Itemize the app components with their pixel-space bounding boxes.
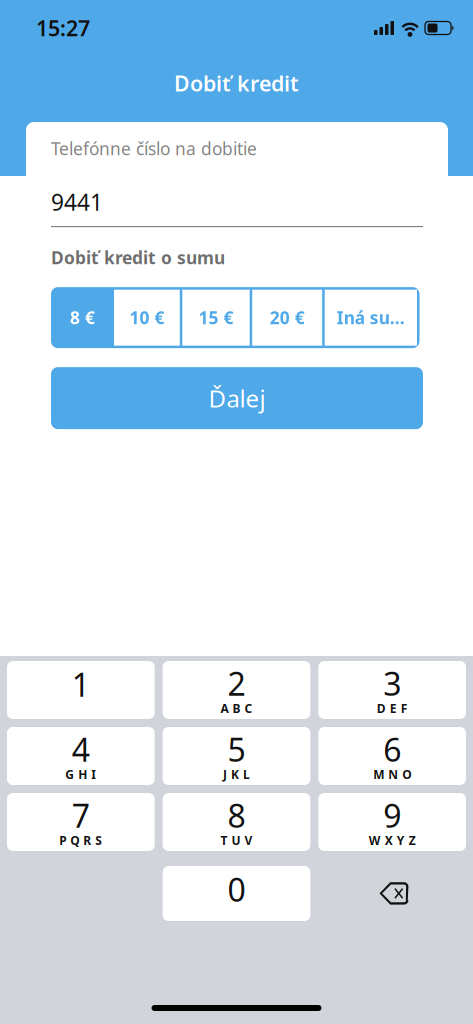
staticText: GHI — [65, 766, 96, 782]
staticText: 20 € — [270, 306, 305, 329]
staticText: WXYZ — [369, 832, 416, 848]
staticText: Telefónne číslo na dobitie — [51, 137, 257, 160]
button[interactable]: 3 — [318, 661, 466, 719]
button[interactable]: 5 — [163, 727, 310, 785]
button[interactable]: 15 € — [182, 290, 250, 346]
staticText: MNO — [373, 766, 411, 782]
staticText: 1 — [72, 663, 90, 705]
staticText: 7 — [72, 794, 90, 836]
staticText: TUV — [220, 832, 252, 848]
staticText: Dobiť kredit — [174, 69, 299, 97]
staticText: DEF — [377, 700, 408, 716]
staticText: JKL — [223, 766, 250, 782]
staticText: Dobiť kredit o sumu — [51, 246, 225, 269]
button[interactable]: 4 — [7, 727, 155, 785]
button[interactable]: 8 € — [53, 290, 111, 346]
button[interactable]: 8 — [163, 793, 310, 851]
staticText: Ďalej — [208, 382, 265, 414]
staticText: 8 — [227, 794, 245, 836]
button[interactable]: 6 — [318, 727, 466, 785]
staticText: 8 € — [70, 306, 95, 329]
button[interactable]: Delete — [318, 866, 466, 921]
staticText: 15 € — [198, 306, 233, 329]
staticText: PQRS — [59, 832, 102, 848]
button[interactable]: 7 — [7, 793, 155, 851]
staticText: 4 — [72, 728, 90, 770]
staticText: 10 € — [129, 306, 164, 329]
button[interactable]: 2 — [163, 661, 310, 719]
staticText: 6 — [383, 728, 401, 770]
button[interactable]: 10 € — [114, 290, 180, 346]
staticText: Iná su... — [337, 306, 405, 329]
button[interactable]: 0 — [163, 866, 310, 921]
staticText: 0 — [227, 868, 245, 910]
staticText: 15:27 — [36, 14, 90, 42]
staticText: 9 — [383, 794, 401, 836]
staticText: 9441 — [51, 187, 103, 217]
button[interactable]: 20 € — [252, 290, 322, 346]
staticText: 5 — [227, 728, 245, 770]
staticText: 3 — [383, 662, 401, 704]
button[interactable]: Ďalej — [51, 367, 423, 429]
staticText: ABC — [220, 700, 252, 716]
staticText: 2 — [227, 662, 245, 704]
button[interactable]: 9 — [318, 793, 466, 851]
button[interactable]: 1 — [7, 661, 155, 719]
button[interactable]: Iná su... — [325, 290, 417, 346]
